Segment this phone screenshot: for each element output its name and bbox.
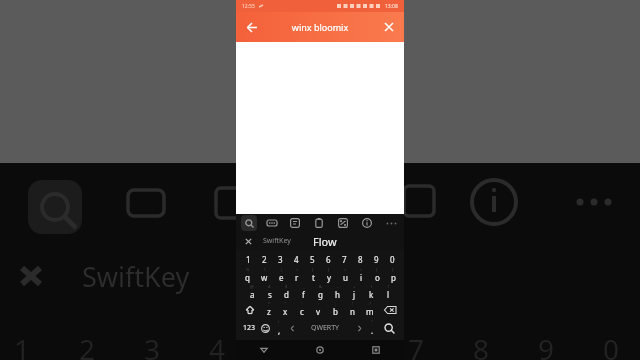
button[interactable]: Back	[236, 340, 292, 360]
staticText: %	[246, 267, 250, 272]
staticText: SwiftKey	[82, 258, 190, 295]
button[interactable]: (	[363, 284, 380, 300]
button[interactable]: ॰	[365, 319, 379, 337]
staticText: {	[376, 267, 378, 272]
button[interactable]: 3	[272, 252, 288, 267]
button[interactable]: 1	[240, 252, 256, 267]
button[interactable]: ?	[361, 301, 378, 318]
button[interactable]: :	[310, 301, 327, 318]
staticText: 3	[278, 254, 283, 265]
staticText: b	[333, 306, 338, 317]
staticText: t	[312, 272, 315, 283]
staticText: *	[268, 301, 271, 306]
button[interactable]: {	[369, 267, 385, 283]
button[interactable]: )	[380, 284, 397, 300]
staticText: .	[371, 325, 374, 336]
staticText: }	[392, 267, 394, 272]
button[interactable]: Back	[236, 12, 266, 42]
staticText: -	[337, 284, 339, 289]
button[interactable]: *	[261, 301, 277, 318]
button[interactable]: Next	[353, 319, 365, 337]
staticText: l	[387, 289, 390, 300]
staticText: x	[283, 306, 288, 317]
button[interactable]: QWERTY	[298, 319, 353, 337]
button[interactable]: $	[278, 284, 295, 300]
staticText: 12:55	[242, 3, 255, 10]
button[interactable]: %	[239, 267, 256, 283]
staticText: 0	[390, 254, 395, 265]
button[interactable]: 5	[304, 252, 320, 267]
button[interactable]: #	[261, 284, 278, 300]
staticText: e	[279, 272, 284, 283]
button[interactable]: =	[289, 267, 305, 283]
staticText: 4	[209, 330, 226, 360]
button[interactable]: More	[383, 215, 399, 231]
button[interactable]: &	[312, 284, 329, 300]
staticText: 3	[144, 330, 161, 360]
button[interactable]: >	[353, 267, 369, 283]
button[interactable]: 2	[256, 252, 272, 267]
button[interactable]: 8	[352, 252, 368, 267]
button[interactable]: Clear	[374, 12, 404, 42]
staticText: p	[391, 272, 396, 283]
button[interactable]: Stickers	[287, 215, 303, 231]
button[interactable]: Search	[241, 215, 257, 231]
staticText: <	[344, 267, 347, 272]
button[interactable]: @	[243, 284, 261, 300]
staticText: $	[285, 284, 288, 289]
button[interactable]: <	[337, 267, 353, 283]
button[interactable]: ]	[321, 267, 337, 283]
button[interactable]: 123	[240, 319, 258, 337]
button[interactable]: Info	[359, 215, 375, 231]
staticText: ,	[278, 325, 281, 336]
button[interactable]: 4	[288, 252, 304, 267]
button[interactable]: 6	[320, 252, 336, 267]
button[interactable]: +	[346, 284, 363, 300]
staticText: 0	[603, 330, 620, 360]
button[interactable]: Previous	[286, 319, 298, 337]
button[interactable]: -	[329, 284, 346, 300]
button[interactable]: 0	[384, 252, 400, 267]
staticText: 123	[243, 323, 256, 333]
button[interactable]: \	[256, 267, 273, 283]
button[interactable]: }	[385, 267, 401, 283]
staticText: z	[267, 306, 271, 317]
button[interactable]: Shift	[239, 301, 261, 318]
staticText: g	[318, 289, 323, 300]
button[interactable]: ।	[272, 319, 286, 337]
staticText: m	[366, 306, 374, 317]
staticText: _	[303, 284, 305, 289]
button[interactable]: 9	[368, 252, 384, 267]
staticText: c	[300, 306, 304, 317]
button[interactable]: 7	[336, 252, 352, 267]
button[interactable]: '	[293, 301, 310, 318]
staticText: +	[353, 284, 356, 289]
button[interactable]: _	[295, 284, 312, 300]
staticText: q	[245, 272, 250, 283]
staticText: Flow	[313, 234, 337, 249]
staticText: 13:08	[385, 3, 398, 10]
button[interactable]: Backspace	[378, 301, 401, 318]
button[interactable]: Emoji	[258, 319, 272, 337]
button[interactable]: [	[305, 267, 321, 283]
button[interactable]: |	[273, 267, 289, 283]
staticText: y	[327, 272, 332, 283]
staticText: #	[268, 284, 271, 289]
button[interactable]: Home	[292, 340, 348, 360]
button[interactable]: Recents	[348, 340, 404, 360]
staticText: f	[302, 289, 305, 300]
button[interactable]: ;	[327, 301, 344, 318]
button[interactable]: Translate	[335, 215, 351, 231]
staticText: 5	[310, 254, 315, 265]
button[interactable]: GIF	[264, 215, 280, 231]
button[interactable]: "	[277, 301, 293, 318]
button[interactable]: Close	[242, 235, 254, 247]
button[interactable]: !	[344, 301, 361, 318]
button[interactable]: Clipboard	[311, 215, 327, 231]
button[interactable]: Search	[379, 319, 400, 337]
staticText: i	[360, 272, 363, 283]
staticText: \	[264, 267, 266, 272]
staticText: 2	[79, 330, 96, 360]
staticText: >	[360, 267, 363, 272]
staticText: '	[301, 301, 302, 306]
